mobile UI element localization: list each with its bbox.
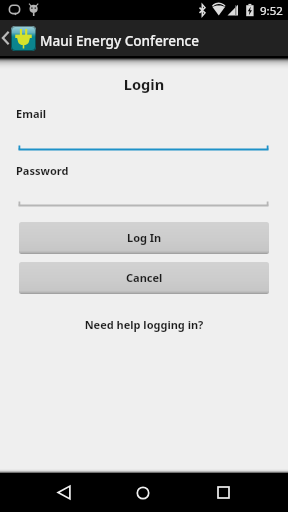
- staticText: Cancel: [126, 270, 163, 285]
- staticText: Email: [16, 106, 47, 121]
- button[interactable]: [0, 144, 288, 152]
- button[interactable]: Recent apps: [199, 473, 247, 512]
- button[interactable]: [0, 200, 288, 208]
- staticText: Log In: [127, 230, 162, 245]
- button[interactable]: Cancel: [19, 262, 269, 294]
- button[interactable]: Need help logging in?: [0, 317, 288, 332]
- button[interactable]: Log In: [19, 222, 269, 254]
- button[interactable]: Back: [40, 473, 88, 512]
- button[interactable]: Navigate up: [0, 20, 40, 56]
- staticText: 9:52: [260, 3, 283, 19]
- button[interactable]: Home: [119, 473, 167, 512]
- staticText: Password: [16, 163, 69, 178]
- staticText: Maui Energy Conference: [40, 31, 200, 50]
- staticText: Login: [0, 74, 288, 94]
